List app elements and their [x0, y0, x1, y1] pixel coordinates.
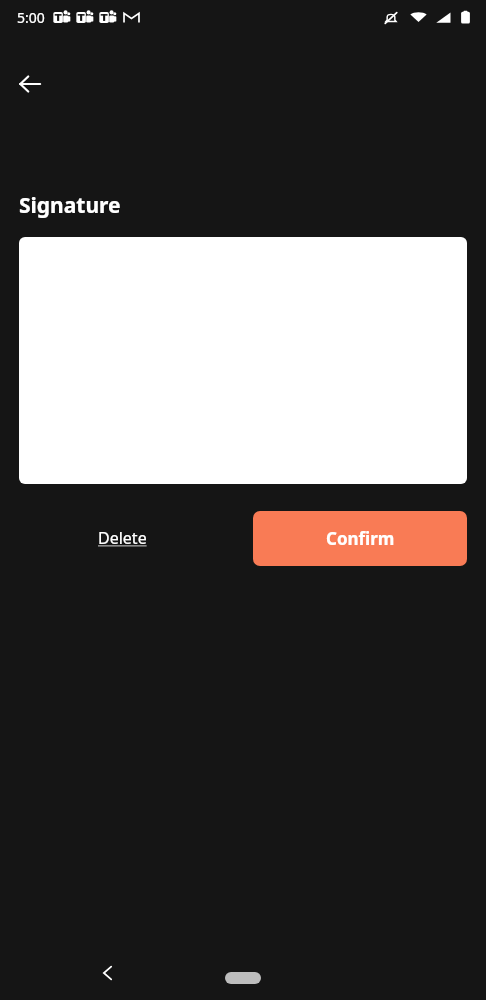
button[interactable]: Back: [6, 60, 54, 108]
staticText: Delete: [98, 527, 147, 549]
button[interactable]: Back: [86, 951, 130, 995]
button[interactable]: Delete: [98, 527, 147, 549]
staticText: Signature: [19, 191, 121, 220]
staticText: Confirm: [326, 527, 395, 550]
button[interactable]: Home: [225, 972, 261, 984]
staticText: 5:00: [17, 8, 45, 27]
button[interactable]: Confirm: [253, 511, 467, 566]
button[interactable]: Signature drawing area: [19, 237, 467, 484]
